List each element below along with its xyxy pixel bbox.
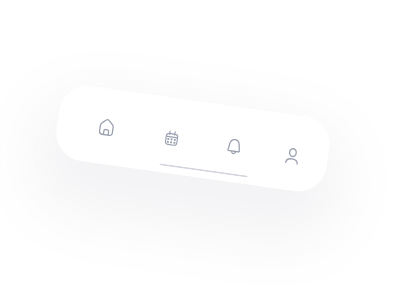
button[interactable]: Calendar: [146, 112, 196, 163]
button[interactable]: Notifications: [209, 120, 259, 171]
button[interactable]: Profile: [267, 130, 317, 181]
button[interactable]: Home: [81, 101, 131, 152]
